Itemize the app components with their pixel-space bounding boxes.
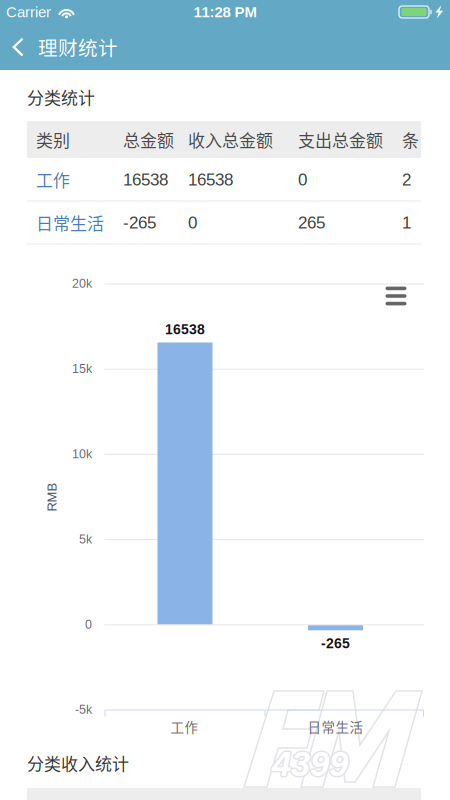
staticText: 工作	[170, 717, 198, 736]
button[interactable]: Back	[0, 24, 128, 70]
staticText: 日常生活	[307, 717, 363, 736]
staticText: 10k	[72, 447, 92, 461]
staticText: 4399	[273, 744, 349, 782]
staticText: 4399	[271, 746, 347, 784]
staticText: 0	[298, 170, 307, 189]
button[interactable]: Chart context menu	[378, 280, 414, 312]
staticText: 工作	[36, 167, 70, 192]
staticText: -265	[123, 213, 156, 232]
staticText: 4399	[272, 746, 348, 785]
staticText: 11:28 PM	[193, 4, 256, 20]
staticText: 类别	[36, 127, 70, 152]
staticText: 16538	[165, 322, 205, 337]
staticText: 分类统计	[27, 85, 95, 109]
staticText: 0	[85, 617, 92, 631]
staticText: 2	[402, 170, 411, 189]
staticText: 16538	[123, 170, 168, 189]
staticText: 5k	[79, 532, 92, 546]
staticText: 0	[188, 213, 197, 232]
staticText: RMB	[37, 490, 66, 504]
staticText: -5k	[75, 702, 92, 716]
staticText: 分类收入统计	[27, 751, 129, 775]
staticText: 1	[402, 213, 411, 232]
staticText: 4399	[273, 746, 349, 784]
staticText: 日常生活	[36, 210, 104, 235]
staticText: 265	[298, 213, 325, 232]
staticText: 4399	[271, 745, 347, 783]
staticText: 4399	[272, 743, 348, 782]
staticText: 理财统计	[38, 33, 118, 61]
staticText: 15k	[72, 362, 92, 376]
staticText: 收入总金额	[188, 127, 273, 152]
staticText: Carrier	[6, 4, 51, 20]
staticText: -265	[321, 635, 350, 651]
staticText: 4399	[272, 745, 348, 783]
staticText: 16538	[188, 170, 233, 189]
staticText: 支出总金额	[298, 127, 383, 152]
staticText: 4399	[271, 744, 347, 782]
staticText: 条	[402, 127, 419, 152]
staticText: 20k	[72, 276, 92, 290]
staticText: 总金额	[123, 127, 174, 152]
staticText: 4399	[273, 745, 349, 783]
